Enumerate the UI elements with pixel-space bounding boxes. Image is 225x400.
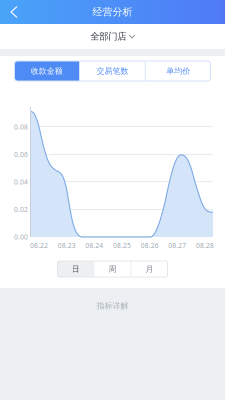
staticText: 收款金额: [31, 66, 63, 76]
staticText: 0.04: [14, 178, 28, 186]
button[interactable]: 单均价: [146, 61, 210, 81]
button[interactable]: 收款金额: [14, 61, 79, 81]
staticText: 指标详解: [96, 301, 128, 311]
staticText: 0.08: [14, 123, 28, 131]
staticText: 全部门店: [90, 31, 126, 42]
staticText: 交易笔数: [96, 66, 128, 76]
staticText: 月: [145, 264, 153, 274]
staticText: 08.27: [168, 241, 186, 250]
staticText: 日: [71, 264, 79, 274]
staticText: 0.02: [14, 205, 28, 214]
button[interactable]: Back: [0, 0, 27, 23]
staticText: 08.25: [113, 241, 131, 250]
button[interactable]: 全部门店: [0, 24, 225, 49]
staticText: 单均价: [166, 66, 190, 76]
staticText: 08.28: [196, 241, 214, 250]
button[interactable]: 交易笔数: [80, 61, 145, 81]
staticText: 0.06: [14, 150, 28, 159]
staticText: 经营分析: [92, 6, 132, 18]
staticText: 08.23: [58, 241, 76, 250]
button[interactable]: 周: [94, 261, 130, 277]
button[interactable]: 月: [131, 261, 167, 277]
button[interactable]: 日: [57, 261, 93, 277]
staticText: 08.22: [30, 241, 48, 250]
staticText: 0.00: [14, 233, 28, 241]
button[interactable]: 指标详解: [84, 298, 140, 314]
staticText: 08.24: [85, 241, 103, 250]
staticText: 周: [108, 264, 116, 274]
staticText: 08.26: [141, 241, 159, 250]
